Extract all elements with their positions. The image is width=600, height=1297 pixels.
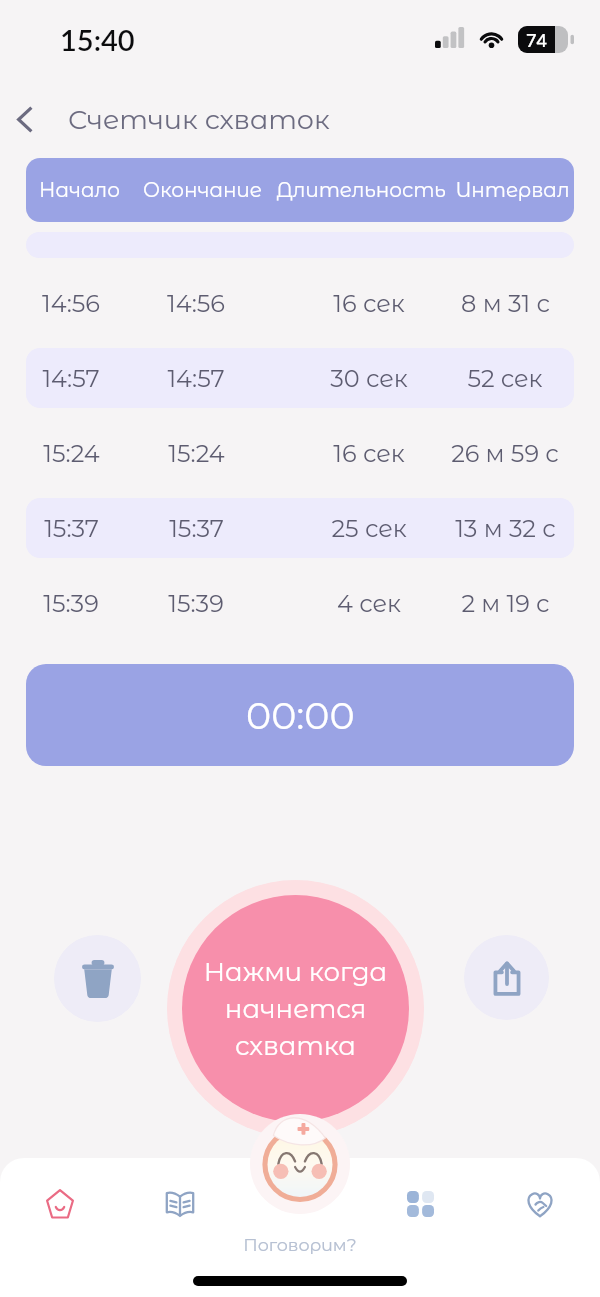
button[interactable]: Chat with assistant [250, 1114, 350, 1214]
button[interactable]: Articles [120, 1158, 240, 1250]
staticText: 74 [526, 29, 547, 51]
staticText: 13 м 32 с [455, 514, 556, 543]
staticText: 8 м 31 с [461, 289, 550, 318]
staticText: 15:37 [169, 514, 224, 543]
staticText: 14:56 [42, 289, 100, 318]
staticText: 15:37 [44, 514, 99, 543]
staticText: Поговорим? [0, 1234, 600, 1255]
staticText: Начало [39, 178, 120, 202]
staticText: 15:24 [168, 439, 225, 468]
button[interactable]: Services [360, 1158, 480, 1250]
button[interactable]: Care [480, 1158, 600, 1250]
button[interactable]: Share [464, 935, 549, 1020]
staticText: 15:39 [43, 589, 99, 618]
staticText: 25 сек [331, 514, 407, 543]
staticText: Окончание [143, 178, 262, 202]
button[interactable]: Home [0, 1158, 120, 1250]
staticText: 14:56 [167, 289, 225, 318]
staticText: Интервал [455, 178, 570, 202]
staticText: 52 сек [467, 364, 543, 393]
staticText: 15:24 [43, 439, 100, 468]
staticText: 4 сек [337, 589, 401, 618]
staticText: 14:57 [42, 364, 100, 393]
staticText: Счетчик схваток [68, 103, 330, 136]
staticText: 15:39 [168, 589, 224, 618]
staticText: 15:40 [60, 22, 135, 57]
button[interactable]: Back [0, 96, 50, 142]
button[interactable]: 14:57 [26, 348, 574, 408]
button[interactable]: 15:39 [26, 573, 574, 633]
staticText: 30 сек [330, 364, 408, 393]
staticText: Длительность [276, 178, 446, 202]
button[interactable]: Нажми когда начнется схватка [167, 880, 424, 1137]
button[interactable]: 14:56 [26, 273, 574, 333]
staticText: 16 сек [333, 439, 405, 468]
staticText: Нажми когда начнется схватка [182, 956, 409, 1062]
staticText: 00:00 [246, 692, 355, 738]
button[interactable]: 15:24 [26, 423, 574, 483]
staticText: 14:57 [167, 364, 225, 393]
staticText: 26 м 59 с [451, 439, 559, 468]
button[interactable]: Delete [54, 935, 141, 1022]
staticText: 2 м 19 с [461, 589, 550, 618]
button[interactable]: 00:00 [26, 664, 574, 766]
button[interactable]: 15:37 [26, 498, 574, 558]
staticText: 16 сек [333, 289, 405, 318]
